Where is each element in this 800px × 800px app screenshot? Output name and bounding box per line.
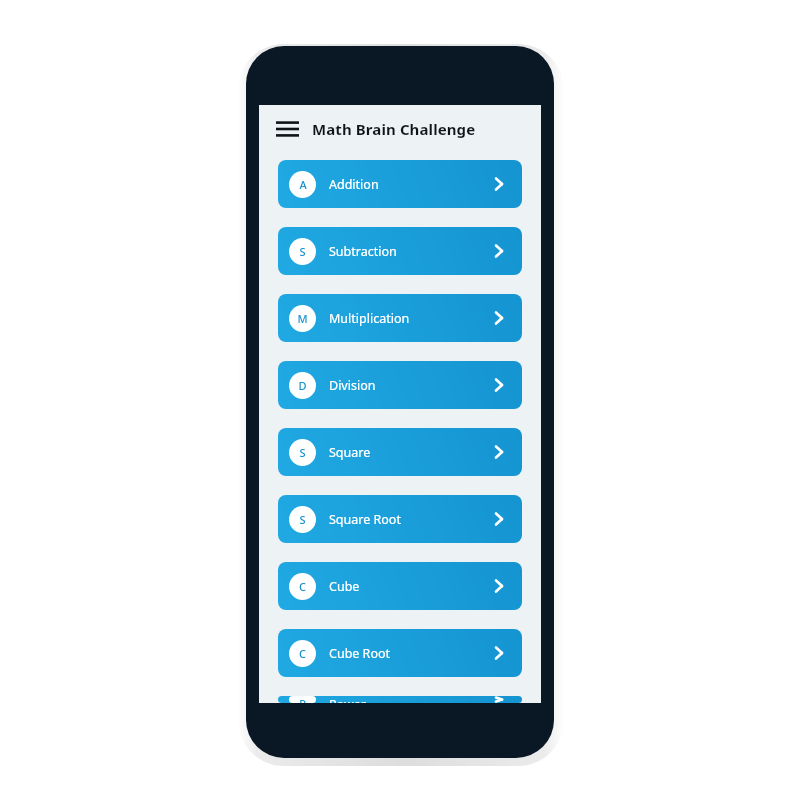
staticText: Subtraction (329, 243, 484, 260)
staticText: S (299, 512, 306, 527)
staticText: C (299, 579, 306, 594)
staticText: P (299, 696, 306, 703)
staticText: A (299, 177, 307, 192)
staticText: S (299, 445, 306, 460)
button[interactable]: S (278, 227, 522, 275)
button[interactable]: S (278, 428, 522, 476)
staticText: Power (329, 696, 484, 703)
staticText: Multiplication (329, 310, 484, 327)
staticText: S (299, 244, 306, 259)
staticText: Division (329, 377, 484, 394)
button[interactable]: Open navigation menu (270, 112, 304, 146)
staticText: C (299, 646, 306, 661)
button[interactable]: D (278, 361, 522, 409)
button[interactable]: A (278, 160, 522, 208)
staticText: M (297, 311, 308, 326)
staticText: Addition (329, 176, 484, 193)
staticText: Square Root (329, 511, 484, 528)
staticText: Cube Root (329, 645, 484, 662)
button[interactable]: C (278, 562, 522, 610)
staticText: Math Brain Challenge (312, 119, 476, 139)
button[interactable]: S (278, 495, 522, 543)
staticText: Cube (329, 578, 484, 595)
staticText: Square (329, 444, 484, 461)
button[interactable]: M (278, 294, 522, 342)
button[interactable]: C (278, 629, 522, 677)
button[interactable]: P (278, 696, 522, 703)
staticText: D (298, 378, 307, 393)
